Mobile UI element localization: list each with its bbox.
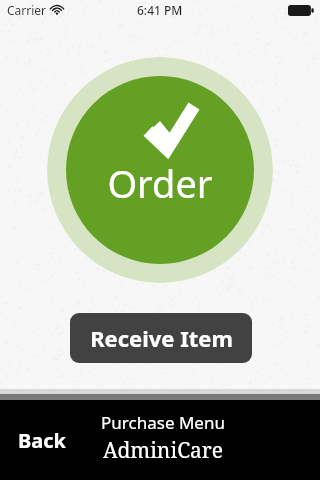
staticText: Receive Item bbox=[90, 323, 233, 353]
staticText: Purchase Menu bbox=[101, 411, 225, 434]
staticText: 6:41 PM bbox=[137, 2, 183, 18]
button[interactable]: Receive Item bbox=[70, 313, 252, 363]
staticText: Back bbox=[18, 427, 66, 454]
staticText: AdminiCare bbox=[103, 436, 223, 465]
staticText: Carrier bbox=[7, 2, 47, 18]
button[interactable]: Order bbox=[47, 57, 273, 283]
button[interactable]: Back bbox=[18, 427, 66, 454]
staticText: Order bbox=[107, 157, 213, 209]
